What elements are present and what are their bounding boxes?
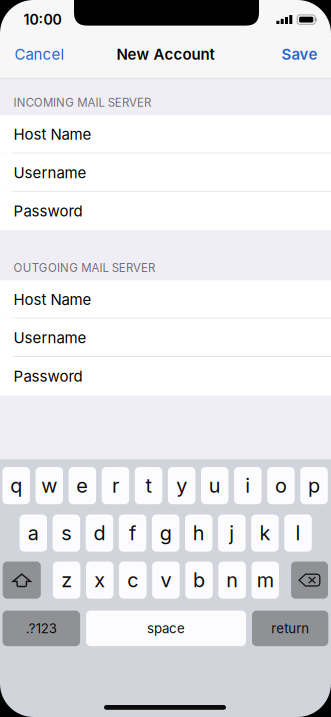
staticText: v <box>160 568 171 592</box>
staticText: Username <box>14 164 87 182</box>
staticText: c <box>127 568 138 592</box>
button[interactable]: d <box>86 514 113 552</box>
staticText: return <box>271 620 309 636</box>
staticText: p <box>308 474 320 498</box>
staticText: .?123 <box>26 620 57 636</box>
button[interactable]: m <box>251 561 279 599</box>
staticText: q <box>10 474 22 498</box>
button[interactable]: n <box>218 561 246 599</box>
staticText: x <box>94 568 105 592</box>
staticText: OUTGOING MAIL SERVER <box>14 261 155 275</box>
staticText: u <box>209 474 221 498</box>
button[interactable]: s <box>53 514 80 552</box>
staticText: d <box>93 521 105 545</box>
button[interactable]: h <box>185 514 212 552</box>
staticText: m <box>257 568 274 592</box>
staticText: j <box>229 521 234 545</box>
staticText: k <box>259 521 270 545</box>
button[interactable]: Shift <box>3 561 41 599</box>
staticText: f <box>129 521 136 545</box>
staticText: e <box>76 474 88 498</box>
button[interactable]: o <box>267 467 295 504</box>
button[interactable]: r <box>102 467 129 504</box>
button[interactable]: Save <box>272 32 331 76</box>
button[interactable]: Username <box>0 319 331 357</box>
button[interactable]: return <box>252 611 328 646</box>
staticText: Username <box>14 329 87 347</box>
staticText: a <box>28 521 39 545</box>
button[interactable]: j <box>218 514 246 552</box>
button[interactable]: Password <box>0 357 331 395</box>
staticText: w <box>41 474 57 498</box>
button[interactable]: Delete <box>291 561 328 599</box>
button[interactable]: a <box>19 514 47 552</box>
button[interactable]: z <box>53 561 80 599</box>
staticText: y <box>176 474 187 498</box>
button[interactable]: .?123 <box>2 611 80 646</box>
staticText: h <box>193 521 205 545</box>
staticText: INCOMING MAIL SERVER <box>14 96 151 110</box>
button[interactable]: Username <box>0 153 331 192</box>
button[interactable]: l <box>284 514 312 552</box>
button[interactable]: c <box>119 561 147 599</box>
staticText: Host Name <box>14 290 92 309</box>
button[interactable]: q <box>2 467 30 504</box>
button[interactable]: Cancel <box>0 32 74 76</box>
staticText: Save <box>282 45 318 63</box>
staticText: Host Name <box>14 125 92 143</box>
staticText: o <box>275 474 287 498</box>
button[interactable]: y <box>168 467 195 504</box>
staticText: space <box>147 620 185 636</box>
button[interactable]: g <box>152 514 179 552</box>
button[interactable]: e <box>69 467 96 504</box>
staticText: i <box>245 474 250 498</box>
button[interactable]: p <box>300 467 328 504</box>
button[interactable]: b <box>185 561 213 599</box>
staticText: New Account <box>116 45 214 63</box>
button[interactable]: Host Name <box>0 115 331 153</box>
button[interactable]: f <box>119 514 146 552</box>
button[interactable]: v <box>152 561 180 599</box>
button[interactable]: k <box>251 514 279 552</box>
button[interactable]: Password <box>0 192 331 230</box>
staticText: Password <box>14 202 83 220</box>
staticText: 10:00 <box>23 11 61 28</box>
staticText: n <box>226 568 238 592</box>
button[interactable]: space <box>86 611 246 646</box>
button[interactable]: x <box>86 561 113 599</box>
staticText: Cancel <box>14 45 64 63</box>
button[interactable]: w <box>35 467 63 504</box>
staticText: z <box>61 568 72 592</box>
staticText: l <box>296 521 301 545</box>
button[interactable]: i <box>234 467 262 504</box>
button[interactable]: t <box>135 467 162 504</box>
staticText: b <box>193 568 205 592</box>
button[interactable]: u <box>201 467 228 504</box>
staticText: r <box>112 474 119 498</box>
staticText: s <box>61 521 71 545</box>
staticText: g <box>160 521 172 545</box>
staticText: t <box>146 474 152 498</box>
staticText: Password <box>14 367 83 385</box>
button[interactable]: Host Name <box>0 280 331 319</box>
